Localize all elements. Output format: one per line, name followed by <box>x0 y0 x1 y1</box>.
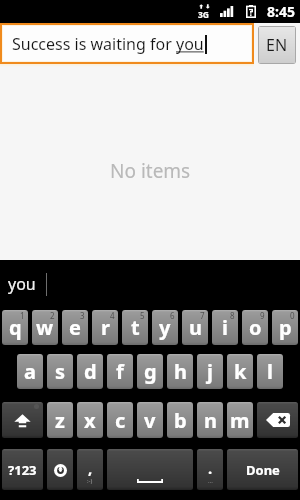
button[interactable]: a <box>17 354 43 389</box>
staticText: z <box>55 407 65 434</box>
staticText: q <box>9 314 22 341</box>
staticText: No items <box>110 158 191 184</box>
other: Input settings <box>54 464 67 477</box>
other: Backspace <box>266 413 290 427</box>
other: Space <box>137 478 163 483</box>
staticText: a <box>24 358 36 385</box>
button[interactable]: z <box>47 402 73 438</box>
button[interactable]: k <box>227 354 253 389</box>
button[interactable]: o <box>242 310 268 345</box>
staticText: 3 <box>80 310 85 321</box>
staticText: g <box>144 358 157 385</box>
button[interactable]: q <box>2 310 28 345</box>
staticText: 0 <box>290 310 295 321</box>
staticText: u <box>189 314 202 341</box>
button[interactable]: Shift <box>2 402 43 438</box>
button[interactable]: Success is waiting for <box>0 23 254 64</box>
staticText: 9 <box>260 310 265 321</box>
staticText: v <box>144 407 156 434</box>
staticText: y <box>159 314 171 341</box>
button[interactable]: y <box>152 310 178 345</box>
button[interactable]: l <box>257 354 283 389</box>
staticText: 3G <box>198 9 210 21</box>
staticText: o <box>249 314 262 341</box>
staticText: 4 <box>110 310 115 321</box>
button[interactable]: Backspace <box>257 402 298 438</box>
button[interactable]: r <box>92 310 118 345</box>
staticText: 1 <box>20 310 25 321</box>
staticText: x <box>84 407 96 434</box>
staticText: p <box>279 314 292 341</box>
staticText: ... <box>208 477 213 485</box>
staticText: i <box>222 314 228 341</box>
staticText: 8:45 <box>267 2 295 21</box>
staticText: EN <box>266 34 288 56</box>
staticText: Success is waiting for <box>12 33 176 55</box>
staticText: 7 <box>200 310 205 321</box>
staticText: 8 <box>230 310 235 321</box>
staticText: m <box>230 407 250 434</box>
button[interactable]: i <box>212 310 238 345</box>
button[interactable]: d <box>77 354 103 389</box>
button[interactable]: you <box>6 273 38 295</box>
button[interactable]: Input settings <box>47 449 73 490</box>
staticText: ?123 <box>8 461 37 479</box>
staticText: Done <box>246 461 280 479</box>
staticText: . <box>208 458 213 478</box>
button[interactable]: v <box>137 402 163 438</box>
button[interactable]: p <box>272 310 298 345</box>
staticText: k <box>234 358 247 385</box>
staticText: d <box>84 358 97 385</box>
button[interactable]: b <box>167 402 193 438</box>
staticText: s <box>55 358 66 385</box>
staticText: , <box>88 458 93 478</box>
staticText: e <box>69 314 81 341</box>
staticText: 5 <box>140 310 145 321</box>
button[interactable]: Done <box>227 449 298 490</box>
staticText: you <box>176 33 204 55</box>
staticText: b <box>174 407 187 434</box>
button[interactable]: w <box>32 310 58 345</box>
button[interactable]: u <box>182 310 208 345</box>
button[interactable]: , <box>77 449 103 490</box>
button[interactable]: . <box>197 449 223 490</box>
staticText: f <box>116 358 124 385</box>
staticText: j <box>207 358 213 385</box>
button[interactable]: t <box>122 310 148 345</box>
button[interactable]: ?123 <box>2 449 43 490</box>
button[interactable]: n <box>197 402 223 438</box>
button[interactable]: c <box>107 402 133 438</box>
staticText: n <box>204 407 217 434</box>
button[interactable]: s <box>47 354 73 389</box>
staticText: l <box>267 358 273 385</box>
other: Shift <box>14 414 31 428</box>
button[interactable]: h <box>167 354 193 389</box>
button[interactable]: f <box>107 354 133 389</box>
button[interactable]: e <box>62 310 88 345</box>
button[interactable]: j <box>197 354 223 389</box>
staticText: 2 <box>50 310 55 321</box>
staticText: 6 <box>170 310 175 321</box>
button[interactable]: m <box>227 402 253 438</box>
staticText: c <box>115 407 126 434</box>
staticText: w <box>36 314 54 341</box>
button[interactable]: g <box>137 354 163 389</box>
staticText: t <box>131 314 140 341</box>
staticText: you <box>8 273 36 295</box>
staticText: r <box>101 314 110 341</box>
button[interactable]: x <box>77 402 103 438</box>
button[interactable]: EN <box>259 27 295 63</box>
staticText: h <box>174 358 187 385</box>
staticText: :-) <box>87 477 93 485</box>
button[interactable]: Space <box>107 449 193 490</box>
